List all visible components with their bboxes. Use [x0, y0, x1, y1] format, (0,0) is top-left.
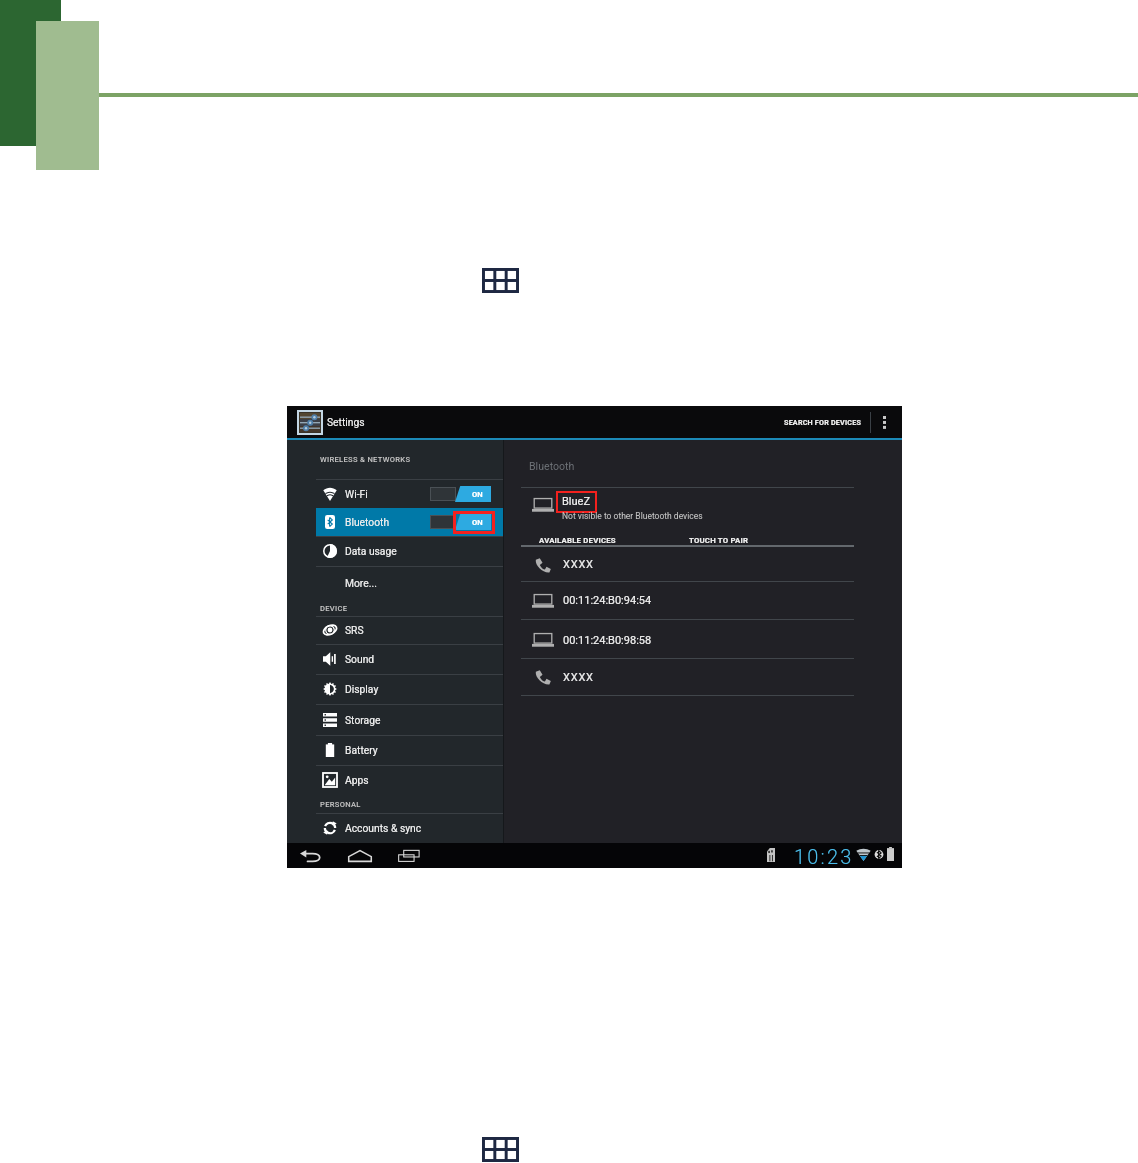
- button[interactable]: Battery: [316, 735, 504, 765]
- staticText: Sound: [345, 653, 375, 665]
- button[interactable]: Settings: [287, 406, 371, 438]
- staticText: SRS: [345, 624, 364, 636]
- staticText: Bluetooth: [529, 460, 575, 472]
- staticText: XXXX: [563, 558, 594, 571]
- button[interactable]: [504, 547, 902, 582]
- button[interactable]: Display: [316, 674, 504, 703]
- button[interactable]: Storage: [316, 704, 504, 735]
- button[interactable]: [504, 621, 902, 659]
- button[interactable]: Bluetooth: [316, 508, 504, 536]
- button[interactable]: Sound: [316, 644, 504, 674]
- staticText: Apps: [345, 774, 369, 786]
- button[interactable]: Wi-Fi: [316, 479, 504, 509]
- staticText: ON: [472, 518, 483, 527]
- button[interactable]: More...: [316, 566, 504, 600]
- staticText: ON: [472, 490, 483, 499]
- staticText: PERSONAL: [320, 800, 361, 809]
- staticText: More...: [345, 577, 377, 589]
- staticText: Bluetooth: [345, 516, 390, 528]
- staticText: Storage: [345, 714, 381, 726]
- button[interactable]: SRS: [316, 616, 504, 644]
- button[interactable]: Recents: [395, 844, 423, 868]
- staticText: Settings: [327, 416, 365, 428]
- button[interactable]: More options: [873, 406, 895, 438]
- staticText: BlueZ: [562, 495, 591, 508]
- button[interactable]: Data usage: [316, 536, 504, 566]
- button[interactable]: [504, 488, 902, 532]
- button[interactable]: [504, 658, 902, 696]
- staticText: Data usage: [345, 545, 397, 557]
- button[interactable]: Home: [346, 844, 374, 868]
- staticText: AVAILABLE DEVICES: [539, 536, 616, 545]
- staticText: 10:23: [794, 845, 854, 868]
- button[interactable]: Back: [296, 844, 324, 868]
- staticText: Display: [345, 683, 379, 695]
- button[interactable]: Apps: [316, 765, 504, 794]
- staticText: 00:11:24:B0:98:58: [563, 634, 652, 647]
- staticText: Wi-Fi: [345, 488, 368, 500]
- staticText: TOUCH TO PAIR: [689, 536, 749, 545]
- button[interactable]: SEARCH FOR DEVICES: [776, 410, 870, 434]
- staticText: Accounts & sync: [345, 822, 422, 834]
- staticText: DEVICE: [320, 604, 348, 613]
- button[interactable]: [504, 581, 902, 620]
- staticText: Not visible to other Bluetooth devices: [562, 511, 703, 521]
- staticText: 00:11:24:B0:94:54: [563, 594, 652, 607]
- staticText: Battery: [345, 744, 378, 756]
- staticText: WIRELESS & NETWORKS: [320, 455, 411, 464]
- staticText: SEARCH FOR DEVICES: [784, 418, 862, 426]
- button[interactable]: Accounts & sync: [316, 813, 504, 842]
- staticText: XXXX: [563, 671, 594, 684]
